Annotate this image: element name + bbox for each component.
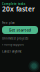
staticText: Get started (8, 27, 31, 33)
staticText: Cancel anytime (2, 50, 22, 53)
staticText: Priority support (2, 43, 24, 46)
button[interactable]: Get started (2, 26, 38, 34)
staticText: Free plan (2, 21, 15, 25)
staticText: 20x faster (2, 5, 35, 13)
staticText: Unlimited projects (2, 37, 28, 40)
staticText: Complete tasks (2, 2, 25, 6)
